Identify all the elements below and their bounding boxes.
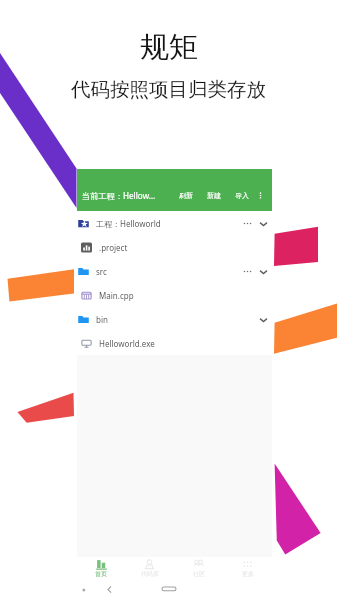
button[interactable]: Home [161,584,177,594]
button[interactable]: Helloworld.exe [77,331,272,355]
staticText: bin [96,314,108,325]
staticText: src [96,266,107,277]
button[interactable]: 代码库 [125,559,174,578]
staticText: 刷新 [179,191,193,200]
staticText: 当前工程：Hellow… [82,190,179,201]
button[interactable]: More options [256,191,265,200]
button[interactable]: 工程：Helloworld [77,211,272,235]
button[interactable]: 首页 [77,559,125,578]
staticText: 社区 [193,570,205,578]
staticText: 导入 [235,191,249,200]
staticText: Main.cpp [99,290,134,301]
button[interactable]: Back [103,583,116,596]
button[interactable]: 更多 [223,559,272,578]
button[interactable]: .project [77,235,272,259]
button[interactable]: src [77,259,272,283]
staticText: Helloworld.exe [99,338,155,349]
staticText: 代码按照项目归类存放 [71,77,266,102]
staticText: 规矩 [140,29,198,66]
staticText: 更多 [242,570,254,578]
staticText: 代码库 [141,570,159,578]
button[interactable]: bin [77,307,272,331]
staticText: 新建 [207,191,221,200]
button[interactable]: Main.cpp [77,283,272,307]
staticText: 工程：Helloworld [96,218,161,229]
button[interactable]: Recents [79,584,91,596]
staticText: .project [99,242,128,253]
staticText: 首页 [95,570,107,578]
button[interactable]: 社区 [174,559,223,578]
button[interactable]: 当前工程：Hellow… [77,180,272,211]
